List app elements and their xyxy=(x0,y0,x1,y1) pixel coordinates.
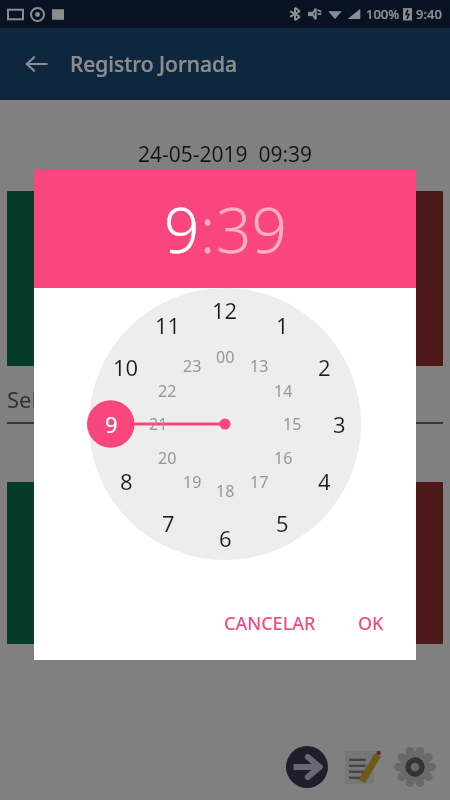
button[interactable]: CANCELAR xyxy=(214,601,326,646)
button[interactable]: 16 xyxy=(268,443,298,473)
button[interactable]: 13 xyxy=(244,351,274,381)
staticText: 24-05-2019 09:39 xyxy=(0,140,450,169)
staticText: 6 xyxy=(219,523,232,553)
staticText: 7 xyxy=(162,508,175,538)
button[interactable]: 6 xyxy=(207,520,243,556)
staticText: 9:40 xyxy=(416,5,442,23)
staticText: : xyxy=(200,187,216,271)
staticText: 39 xyxy=(216,187,287,271)
staticText: 18 xyxy=(216,480,235,502)
staticText: 20 xyxy=(158,447,177,469)
button[interactable]: Back xyxy=(16,44,56,84)
staticText: 1 xyxy=(276,310,289,340)
staticText: 22 xyxy=(158,380,177,402)
button[interactable] xyxy=(235,191,443,366)
staticText: 100% xyxy=(366,5,400,23)
button[interactable]: 4 xyxy=(306,463,342,499)
staticText: 11 xyxy=(155,310,181,340)
staticText: 2 xyxy=(318,352,331,382)
button[interactable]: 00 xyxy=(210,342,240,372)
staticText: 16 xyxy=(274,447,293,469)
button[interactable]: OK xyxy=(348,601,394,646)
staticText: Seleccionar xyxy=(7,384,125,414)
button[interactable]: 9 xyxy=(164,187,200,271)
button[interactable]: Exit xyxy=(280,740,334,794)
staticText: 00 xyxy=(216,346,235,368)
staticText: 8 xyxy=(120,466,133,496)
button[interactable]: 21 xyxy=(143,409,173,439)
button[interactable]: 9 xyxy=(93,406,129,442)
staticText: 9 xyxy=(105,409,118,439)
button[interactable]: 7 xyxy=(150,505,186,541)
button[interactable]: 10 xyxy=(108,349,144,385)
button[interactable]: 1 xyxy=(264,307,300,343)
staticText: 3 xyxy=(333,409,346,439)
button[interactable]: 39 xyxy=(216,187,287,271)
button[interactable]: 14 xyxy=(268,376,298,406)
staticText: 13 xyxy=(250,355,269,377)
staticText: 12 xyxy=(212,295,238,325)
staticText: 23 xyxy=(183,355,202,377)
staticText: OK xyxy=(358,611,384,636)
button[interactable]: 20 xyxy=(152,443,182,473)
button[interactable]: 18 xyxy=(210,476,240,506)
button[interactable]: Edit notes xyxy=(334,740,388,794)
staticText: 15 xyxy=(283,413,302,435)
staticText: 4 xyxy=(318,466,331,496)
button[interactable] xyxy=(7,482,214,644)
button[interactable]: 15 xyxy=(277,409,307,439)
button[interactable]: 17 xyxy=(244,467,274,497)
staticText: Registro Jornada xyxy=(70,50,238,79)
button[interactable]: 23 xyxy=(177,351,207,381)
staticText: 9 xyxy=(164,187,200,271)
staticText: CANCELAR xyxy=(224,611,316,636)
button[interactable] xyxy=(7,191,214,366)
button[interactable] xyxy=(235,482,443,644)
staticText: 17 xyxy=(250,471,269,493)
button[interactable]: 12 xyxy=(207,292,243,328)
button[interactable]: 3 xyxy=(321,406,357,442)
button[interactable]: 19 xyxy=(177,467,207,497)
staticText: 5 xyxy=(276,508,289,538)
staticText: 21 xyxy=(149,413,168,435)
button[interactable]: 22 xyxy=(152,376,182,406)
button[interactable]: 8 xyxy=(108,463,144,499)
button[interactable]: Settings xyxy=(388,740,442,794)
staticText: 14 xyxy=(274,380,293,402)
staticText: 19 xyxy=(183,471,202,493)
staticText: 10 xyxy=(113,352,139,382)
button[interactable]: 2 xyxy=(306,349,342,385)
button[interactable]: 11 xyxy=(150,307,186,343)
button[interactable]: 5 xyxy=(264,505,300,541)
